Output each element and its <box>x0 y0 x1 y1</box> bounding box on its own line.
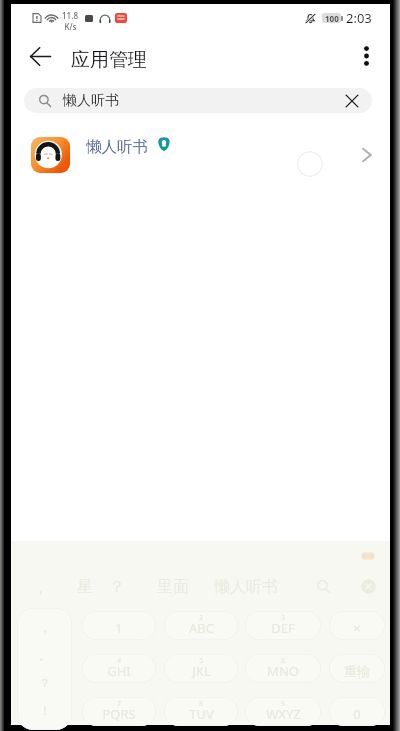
button[interactable]: Back <box>20 36 60 76</box>
staticText: MNO <box>267 662 299 680</box>
button[interactable]: Select app <box>297 151 323 177</box>
staticText: 2:03 <box>346 9 372 27</box>
staticText: 3 <box>281 613 286 623</box>
staticText: DEF <box>271 619 295 637</box>
button[interactable]: WXYZ <box>245 697 321 726</box>
button[interactable]: PQRS <box>82 697 156 726</box>
button[interactable]: 懒人听书 <box>24 88 372 113</box>
staticText: GHI <box>107 662 131 680</box>
staticText: WXYZ <box>266 705 301 723</box>
staticText: 6 <box>281 656 286 666</box>
button[interactable]: Punctuation <box>17 608 72 730</box>
staticText: × <box>353 619 361 637</box>
staticText: 7 <box>117 699 122 709</box>
staticText: ？ <box>109 577 125 597</box>
staticText: JKL <box>192 662 211 680</box>
staticText: ABC <box>189 619 214 637</box>
button[interactable]: 重输 <box>329 654 385 683</box>
button[interactable]: × <box>329 611 385 640</box>
staticText: 11.8 <box>62 10 78 21</box>
staticText: 。 <box>39 648 51 663</box>
button[interactable]: Search candidates <box>311 574 335 598</box>
button[interactable]: TUV <box>164 697 238 726</box>
button[interactable]: JKL <box>164 654 238 683</box>
button[interactable]: 懒人听书 <box>11 131 390 187</box>
staticText: 100 <box>325 13 339 23</box>
button[interactable]: DEF <box>245 611 321 640</box>
staticText: 应用管理 <box>71 48 147 72</box>
staticText: 8 <box>199 699 204 709</box>
staticText: 5 <box>199 656 204 666</box>
button[interactable]: 0 <box>329 697 385 726</box>
staticText: TUV <box>189 705 214 723</box>
staticText: 懒人听书 <box>86 137 148 157</box>
staticText: 懒人听书 <box>214 577 278 597</box>
staticText: 1 <box>115 619 123 637</box>
button[interactable]: ABC <box>164 611 238 640</box>
staticText: K/s <box>64 21 77 32</box>
staticText: 懒人听书 <box>63 92 119 110</box>
button[interactable]: GHI <box>82 654 156 683</box>
button[interactable]: More options <box>346 36 386 76</box>
button[interactable]: Clear search <box>340 89 364 113</box>
staticText: 2 <box>199 613 204 623</box>
button[interactable]: Close candidates <box>356 574 380 598</box>
staticText: 里面 <box>157 577 189 597</box>
button[interactable]: MNO <box>245 654 321 683</box>
staticText: PQRS <box>102 705 136 723</box>
staticText: 4 <box>117 656 122 666</box>
staticText: 星 <box>77 577 93 597</box>
staticText: ？ <box>39 675 51 690</box>
staticText: ！ <box>39 703 51 718</box>
staticText: 0 <box>353 705 361 723</box>
staticText: 9 <box>281 699 286 709</box>
staticText: 重输 <box>344 663 370 679</box>
